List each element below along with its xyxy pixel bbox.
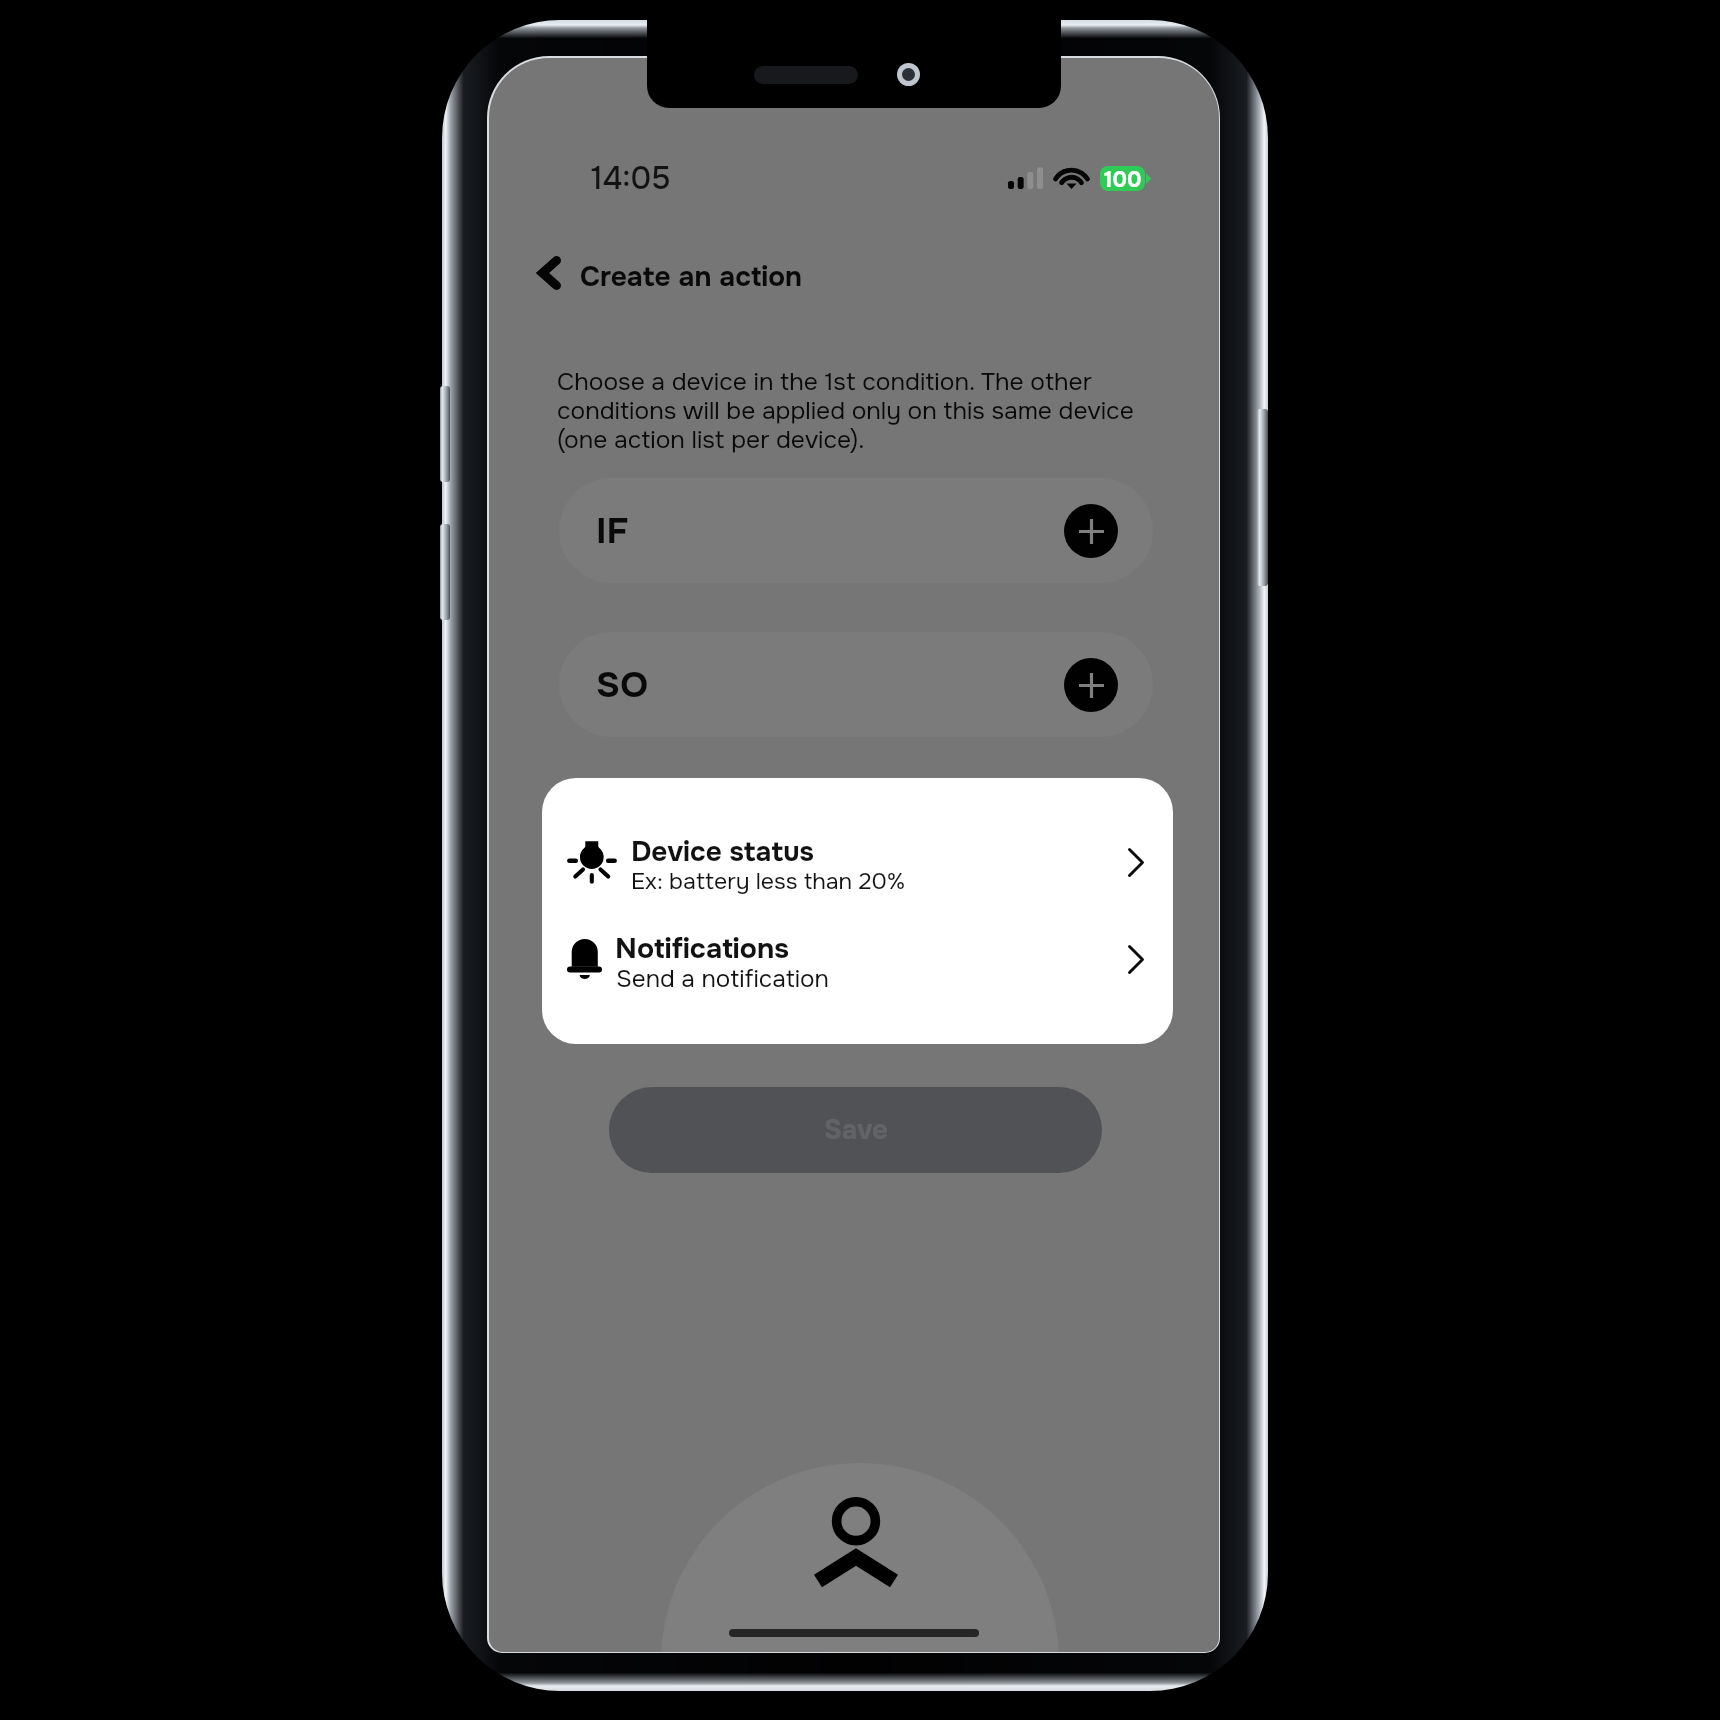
staticText: Send a notification [616,963,829,994]
staticText: Save [824,1113,888,1147]
staticText: Ex: battery less than 20% [631,867,906,896]
button[interactable] [542,916,1173,1006]
button[interactable] [542,818,1173,908]
staticText: Device status [631,834,814,870]
staticText: Create an action [580,259,802,295]
staticText: SO [596,662,648,708]
button[interactable]: Account [661,1463,1059,1652]
button[interactable]: Back [516,240,582,306]
button[interactable]: Save [609,1087,1102,1173]
staticText: IF [596,508,629,554]
button[interactable]: Add SO condition [1064,658,1118,712]
button[interactable]: SO [559,632,1153,737]
staticText: Choose a device in the 1st condition. Th… [557,366,1157,455]
staticText: 14:05 [591,159,671,199]
staticText: 100 [1104,166,1142,191]
staticText: Notifications [615,930,789,966]
button[interactable]: Add IF condition [1064,504,1118,558]
button[interactable]: IF [559,478,1153,583]
